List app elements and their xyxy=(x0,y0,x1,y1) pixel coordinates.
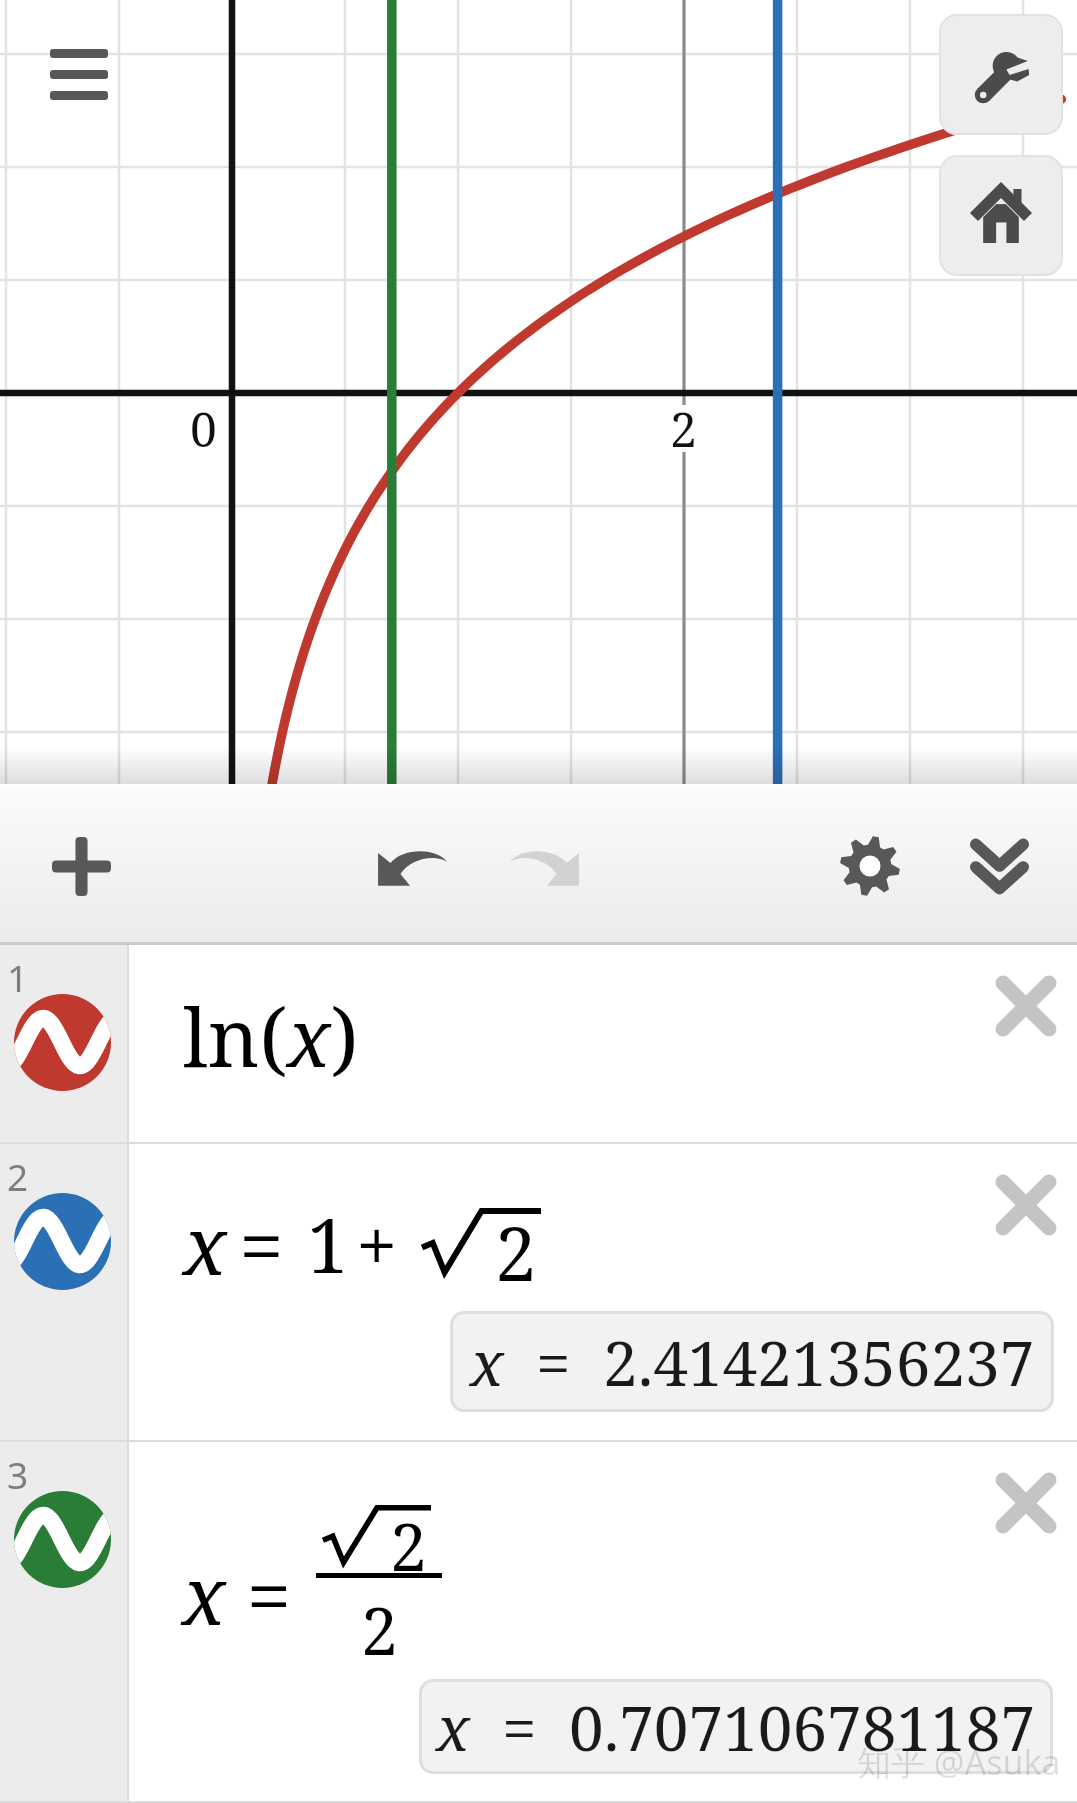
staticText: 2 xyxy=(495,1202,537,1303)
staticText: 2 xyxy=(7,1151,29,1201)
staticText: x = 2.41421356237 xyxy=(470,1320,1035,1404)
button[interactable]: Menu xyxy=(20,20,138,138)
staticText: 2 xyxy=(670,396,697,461)
button[interactable]: Redo xyxy=(486,808,602,924)
button[interactable]: Delete expression xyxy=(978,1157,1074,1253)
staticText: 3 xyxy=(7,1449,29,1499)
button[interactable]: Settings xyxy=(812,808,928,924)
button[interactable]: 3 xyxy=(0,1442,1077,1803)
staticText: x xyxy=(183,1189,227,1298)
button[interactable]: x = 0.707106781187 xyxy=(419,1679,1053,1774)
staticText: 知乎 @Asuka xyxy=(857,1739,1061,1785)
button[interactable]: Undo xyxy=(354,808,470,924)
button[interactable]: Delete expression xyxy=(978,1455,1074,1551)
staticText: + xyxy=(356,1194,398,1295)
button[interactable]: Home xyxy=(939,155,1063,276)
staticText: 1 xyxy=(307,1194,349,1295)
button[interactable]: Collapse xyxy=(941,808,1057,924)
staticText: 1 xyxy=(7,952,29,1002)
staticText: = xyxy=(239,1189,284,1298)
staticText: 2 xyxy=(361,1584,398,1674)
staticText: 0 xyxy=(190,396,217,461)
button[interactable]: 1 xyxy=(0,945,1077,1144)
button[interactable]: Add expression xyxy=(23,808,139,924)
staticText: x = 0.707106781187 xyxy=(436,1685,1036,1769)
button[interactable]: x = 2.41421356237 xyxy=(450,1311,1054,1412)
button[interactable]: Delete expression xyxy=(978,958,1074,1054)
button[interactable]: 2 xyxy=(0,1144,1077,1442)
button[interactable]: Tools xyxy=(939,14,1063,135)
staticText: 2 xyxy=(390,1500,427,1590)
staticText: x = xyxy=(182,1539,292,1648)
staticText: ln(x) xyxy=(183,981,359,1090)
